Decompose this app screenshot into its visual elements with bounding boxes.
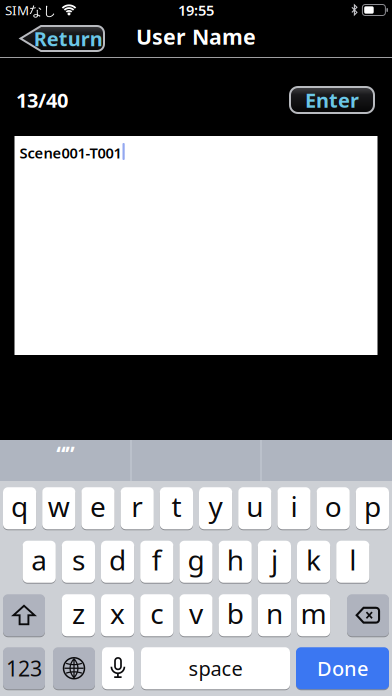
staticText: m: [301, 595, 327, 632]
button[interactable]: Space: [141, 647, 290, 689]
staticText: g: [187, 541, 204, 578]
button[interactable]: z: [62, 594, 95, 636]
staticText: Enter: [305, 87, 359, 113]
staticText: z: [72, 595, 85, 632]
staticText: t: [171, 488, 181, 525]
staticText: SIMなし: [5, 1, 57, 19]
button[interactable]: w: [42, 487, 75, 529]
button[interactable]: i: [277, 487, 311, 529]
button[interactable]: Next keyboard: [53, 647, 95, 689]
staticText: y: [209, 488, 223, 525]
staticText: u: [246, 488, 263, 525]
button[interactable]: u: [238, 487, 271, 529]
button[interactable]: q: [3, 487, 36, 529]
button[interactable]: Numbers: [3, 647, 45, 689]
button[interactable]: y: [199, 487, 232, 529]
staticText: s: [72, 541, 85, 578]
button[interactable]: g: [179, 541, 213, 583]
staticText: “”: [56, 439, 74, 468]
button[interactable]: r: [121, 487, 154, 529]
staticText: i: [290, 488, 297, 525]
button[interactable]: b: [219, 594, 252, 636]
button[interactable]: Done: [296, 647, 389, 689]
staticText: x: [110, 595, 125, 632]
staticText: w: [48, 488, 70, 525]
button[interactable]: c: [140, 594, 173, 636]
button[interactable]: h: [219, 541, 252, 583]
staticText: q: [11, 488, 28, 525]
button[interactable]: Enter: [290, 87, 374, 113]
button[interactable]: m: [297, 594, 330, 636]
staticText: f: [152, 541, 162, 578]
button[interactable]: n: [258, 594, 291, 636]
button[interactable]: a: [23, 541, 56, 583]
staticText: b: [227, 595, 244, 632]
button[interactable]: t: [160, 487, 193, 529]
button[interactable]: e: [81, 487, 115, 529]
staticText: p: [364, 488, 381, 525]
staticText: Scene001-T001: [19, 143, 121, 162]
staticText: c: [150, 595, 163, 632]
staticText: Return: [34, 25, 103, 52]
button[interactable]: p: [356, 487, 389, 529]
staticText: r: [131, 488, 143, 525]
button[interactable]: Return: [19, 24, 105, 52]
staticText: j: [271, 541, 278, 578]
button[interactable]: x: [101, 594, 134, 636]
button[interactable]: Candidate “”: [0, 440, 130, 481]
staticText: 123: [6, 654, 42, 682]
staticText: 19:55: [178, 0, 214, 20]
button[interactable]: Shift: [3, 594, 45, 636]
staticText: 13/40: [16, 87, 68, 113]
button[interactable]: o: [317, 487, 350, 529]
staticText: Done: [317, 655, 368, 682]
button[interactable]: s: [62, 541, 95, 583]
button[interactable]: f: [140, 541, 173, 583]
staticText: e: [90, 488, 106, 525]
button[interactable]: j: [258, 541, 291, 583]
staticText: v: [189, 595, 203, 632]
button[interactable]: d: [101, 541, 134, 583]
staticText: l: [349, 541, 356, 578]
staticText: h: [227, 541, 244, 578]
staticText: n: [266, 595, 283, 632]
staticText: d: [109, 541, 126, 578]
button[interactable]: k: [297, 541, 330, 583]
button[interactable]: Dictation: [102, 647, 134, 689]
button[interactable]: l: [336, 541, 369, 583]
staticText: User Name: [136, 22, 256, 51]
staticText: a: [31, 541, 47, 578]
staticText: space: [188, 655, 242, 682]
button[interactable]: Delete: [347, 594, 389, 636]
staticText: k: [306, 541, 321, 578]
button[interactable]: v: [179, 594, 213, 636]
staticText: o: [325, 488, 342, 525]
